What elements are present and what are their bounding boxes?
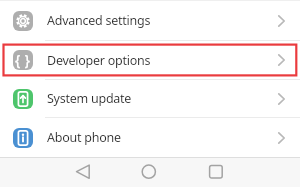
staticText: { } (15, 51, 31, 69)
staticText: Advanced settings (47, 12, 151, 29)
button[interactable]: { } (0, 41, 300, 79)
staticText: Developer options (47, 52, 151, 69)
button[interactable]: About phone (0, 118, 300, 157)
button[interactable]: Advanced settings (0, 1, 300, 40)
staticText: About phone (47, 129, 121, 146)
staticText: System update (47, 90, 132, 107)
button[interactable]: System update (0, 80, 300, 117)
